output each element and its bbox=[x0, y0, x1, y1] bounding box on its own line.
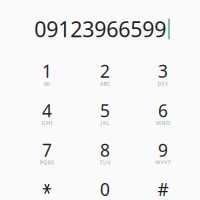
button[interactable]: 7 P Q R S bbox=[18, 130, 76, 170]
staticText: ∞ bbox=[43, 78, 51, 89]
button[interactable]: 1 bbox=[18, 51, 76, 91]
button[interactable]: Pound bbox=[134, 170, 192, 200]
button[interactable]: 9 W X Y Z bbox=[134, 130, 192, 170]
staticText: TUV bbox=[99, 159, 111, 166]
staticText: 4 bbox=[42, 99, 52, 122]
staticText: DEF bbox=[157, 80, 169, 87]
staticText: 9 bbox=[158, 138, 168, 161]
staticText: 09123966599 bbox=[34, 15, 166, 43]
button[interactable]: 6 M N O bbox=[134, 91, 192, 130]
staticText: 0 bbox=[100, 178, 110, 200]
staticText: 3 bbox=[158, 60, 168, 83]
staticText: ABC bbox=[100, 80, 110, 87]
button[interactable]: 4 G H I bbox=[18, 91, 76, 130]
button[interactable]: 8 T U V bbox=[76, 130, 134, 170]
button[interactable]: Star bbox=[18, 170, 76, 200]
staticText: 8 bbox=[100, 138, 110, 161]
staticText: MNO bbox=[156, 119, 170, 127]
button[interactable]: 3 D E F bbox=[134, 51, 192, 91]
staticText: PQRS bbox=[40, 159, 54, 166]
staticText: 7 bbox=[42, 138, 52, 161]
button[interactable]: Number field, 09123966599 bbox=[2, 7, 200, 51]
staticText: WXYZ bbox=[155, 159, 171, 166]
staticText: 1 bbox=[42, 60, 52, 83]
button[interactable]: 2 A B C bbox=[76, 51, 134, 91]
button[interactable]: 5 J K L bbox=[76, 91, 134, 130]
staticText: # bbox=[157, 178, 168, 200]
staticText: GHI bbox=[41, 119, 53, 127]
staticText: 6 bbox=[158, 99, 168, 122]
staticText: 5 bbox=[100, 99, 110, 122]
staticText: JKL bbox=[100, 119, 110, 127]
staticText: 2 bbox=[100, 60, 110, 83]
button[interactable]: 0 bbox=[76, 170, 134, 200]
